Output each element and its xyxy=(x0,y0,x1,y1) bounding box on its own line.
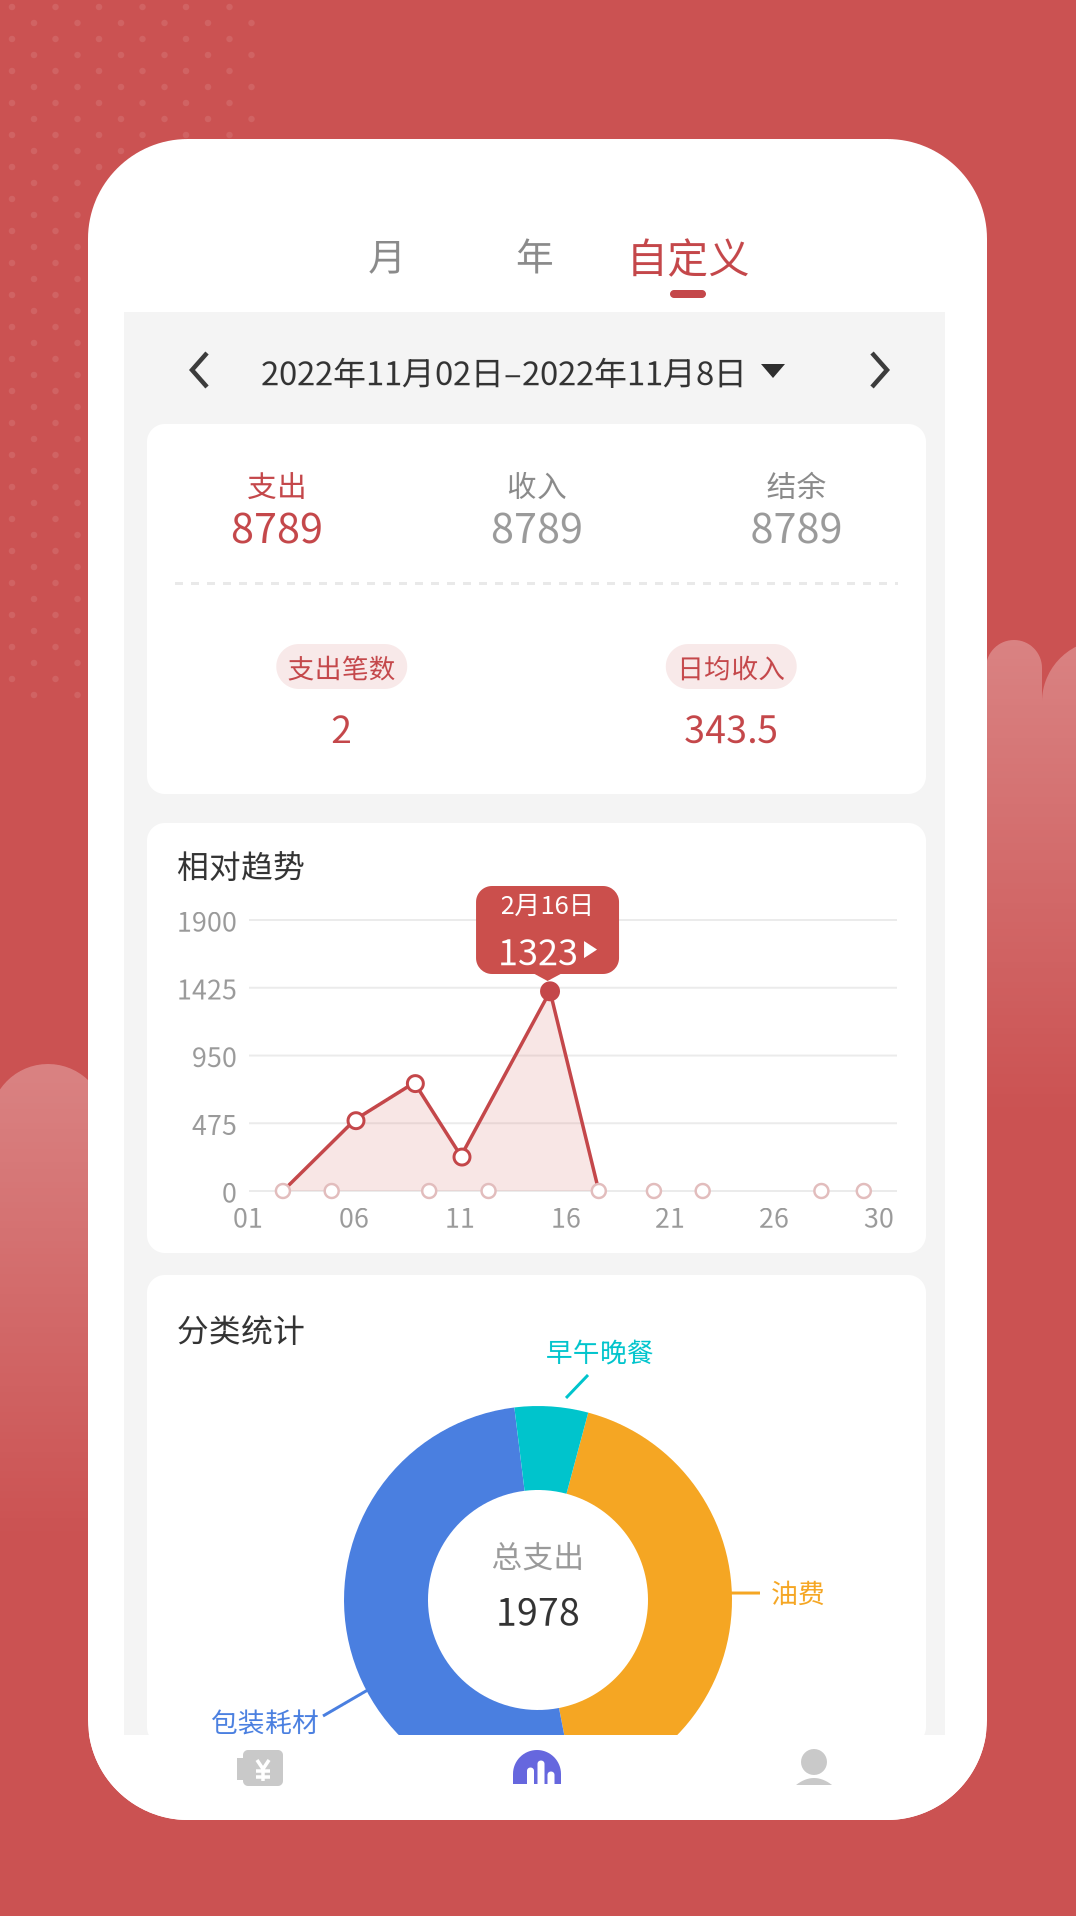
staticText: 收入 xyxy=(507,462,567,506)
staticText: 16 xyxy=(551,1197,581,1235)
staticText: 8789 xyxy=(750,495,842,555)
staticText: 06 xyxy=(339,1197,369,1235)
staticText: 30 xyxy=(864,1197,894,1235)
button[interactable]: 年 xyxy=(475,221,595,287)
staticText: 相对趋势 xyxy=(177,841,305,887)
staticText: 支出 xyxy=(247,462,307,506)
staticText: 8789 xyxy=(231,495,323,555)
button[interactable]: 月 xyxy=(327,221,447,287)
button[interactable]: 2022年11月02日–2022年11月8日 xyxy=(243,340,803,402)
button[interactable]: Next period xyxy=(866,350,893,390)
staticText: 21 xyxy=(655,1197,685,1235)
button[interactable]: Previous period xyxy=(186,350,213,390)
staticText: 475 xyxy=(192,1104,237,1142)
staticText: 2022年11月02日–2022年11月8日 xyxy=(261,347,747,395)
button[interactable]: 自定义 xyxy=(598,215,778,311)
staticText: 年 xyxy=(516,226,554,281)
staticText: 早午晚餐 xyxy=(546,1331,654,1370)
staticText: 2月16日 xyxy=(500,884,594,921)
staticText: 包装耗材 xyxy=(211,1701,319,1740)
staticText: 月 xyxy=(368,226,406,281)
staticText: 日均收入 xyxy=(677,647,785,686)
staticText: 8789 xyxy=(491,495,583,555)
staticText: 01 xyxy=(233,1197,263,1235)
button[interactable]: Bills xyxy=(212,1743,304,1811)
staticText: 950 xyxy=(192,1036,237,1075)
staticText: 0 xyxy=(222,1172,237,1210)
staticText: 26 xyxy=(759,1197,789,1235)
button[interactable]: Profile xyxy=(766,1743,858,1811)
staticText: 分类统计 xyxy=(177,1305,305,1351)
staticText: 11 xyxy=(445,1197,475,1235)
staticText: 支出笔数 xyxy=(288,647,396,686)
staticText: 1425 xyxy=(177,968,237,1007)
staticText: 1323 xyxy=(498,923,578,976)
staticText: 总支出 xyxy=(491,1532,584,1577)
staticText: 结余 xyxy=(766,462,826,506)
staticText: 343.5 xyxy=(684,700,778,754)
staticText: 油费 xyxy=(771,1572,825,1611)
staticText: 自定义 xyxy=(626,225,749,285)
button[interactable]: Statistics xyxy=(490,1743,582,1811)
staticText: 1978 xyxy=(496,1582,580,1637)
staticText: 1900 xyxy=(177,901,237,939)
staticText: 2 xyxy=(331,700,352,754)
